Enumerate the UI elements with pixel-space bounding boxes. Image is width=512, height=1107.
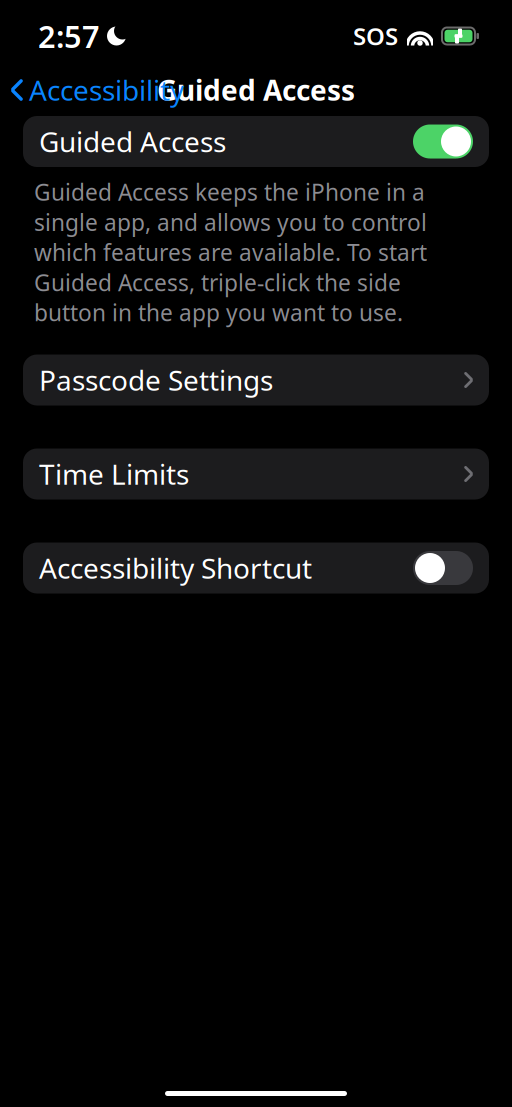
button[interactable]: Accessibility bbox=[0, 65, 184, 115]
staticText: Guided Access keeps the iPhone in a sing… bbox=[34, 177, 427, 327]
button[interactable]: Time Limits bbox=[23, 448, 489, 499]
button[interactable]: Accessibility Shortcut bbox=[23, 542, 489, 593]
staticText: Guided Access bbox=[157, 71, 355, 109]
staticText: Guided Access bbox=[39, 123, 226, 160]
staticText: Passcode Settings bbox=[39, 361, 273, 399]
staticText: SOS bbox=[353, 20, 398, 52]
staticText: Accessibility bbox=[29, 71, 184, 109]
button[interactable]: Passcode Settings bbox=[23, 354, 489, 405]
staticText: 2:57 bbox=[38, 16, 100, 56]
staticText: Time Limits bbox=[39, 455, 189, 493]
button[interactable]: Guided Access bbox=[23, 116, 489, 167]
staticText: Accessibility Shortcut bbox=[39, 549, 312, 587]
